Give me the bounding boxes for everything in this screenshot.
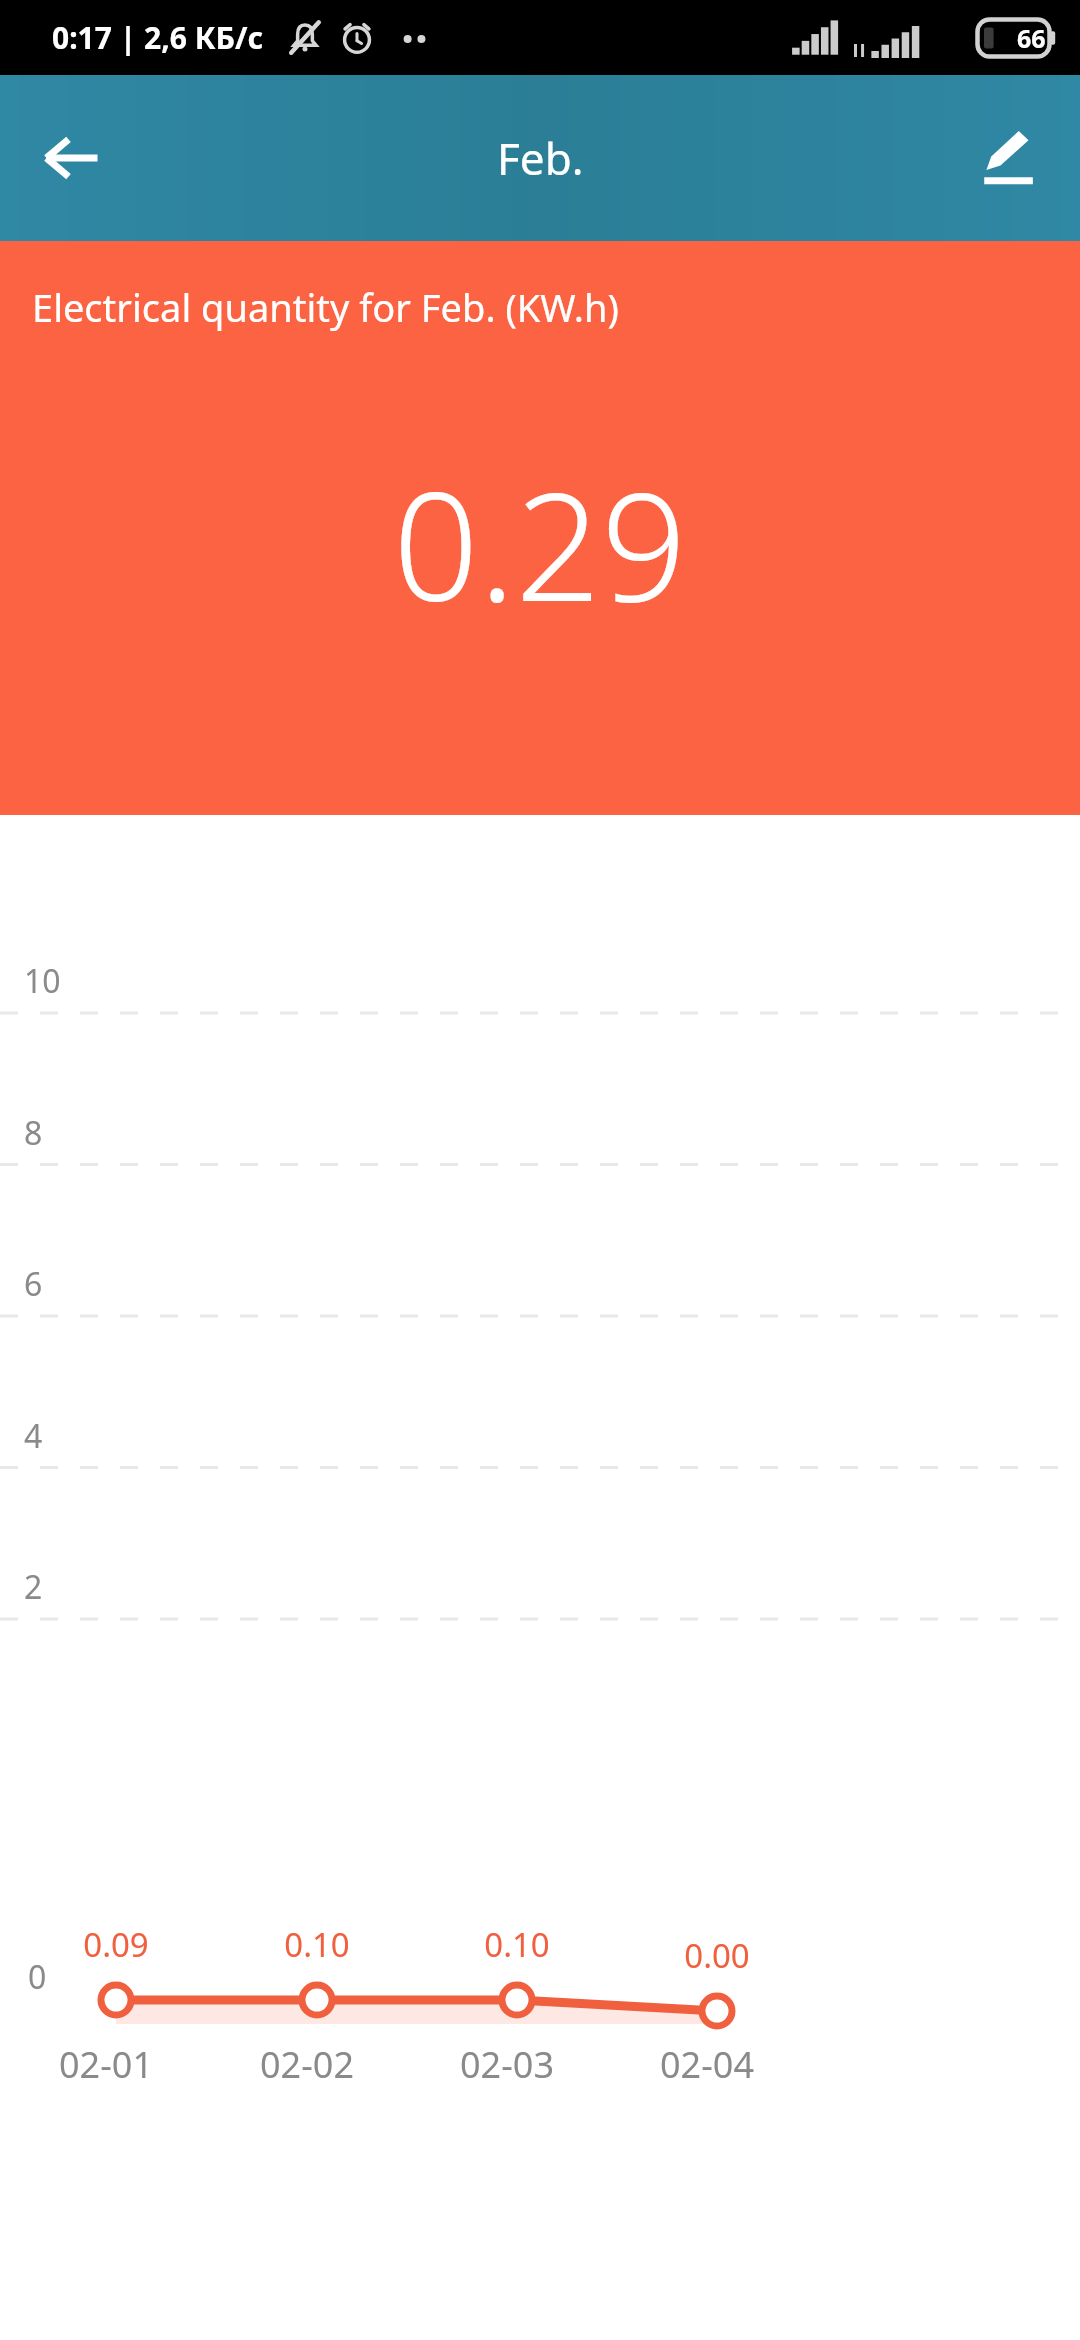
staticText: 8 bbox=[24, 1111, 43, 1155]
staticText: 10 bbox=[24, 959, 61, 1003]
staticText: 0.09 bbox=[46, 1922, 186, 1967]
staticText: 6 bbox=[24, 1262, 43, 1306]
staticText: 2 bbox=[24, 1565, 43, 1609]
staticText: 0.10 bbox=[247, 1922, 387, 1967]
staticText: 02-03 bbox=[427, 2040, 587, 2089]
button[interactable]: Edit bbox=[958, 108, 1058, 208]
staticText: 02-02 bbox=[227, 2040, 387, 2089]
staticText: 0.29 bbox=[393, 441, 687, 645]
staticText: 0 bbox=[28, 1955, 47, 1999]
staticText: Feb. bbox=[497, 128, 584, 188]
staticText: Electrical quantity for Feb. (KW.h) bbox=[32, 281, 619, 333]
button[interactable]: Back bbox=[22, 108, 122, 208]
staticText: 02-04 bbox=[627, 2040, 787, 2089]
staticText: 02-01 bbox=[26, 2040, 186, 2089]
staticText: 0.10 bbox=[447, 1922, 587, 1967]
staticText: 66 bbox=[1017, 21, 1046, 55]
staticText: 0.00 bbox=[647, 1933, 787, 1978]
staticText: 0:17 | 2,6 КБ/c bbox=[52, 17, 263, 58]
staticText: 4 bbox=[24, 1414, 43, 1458]
